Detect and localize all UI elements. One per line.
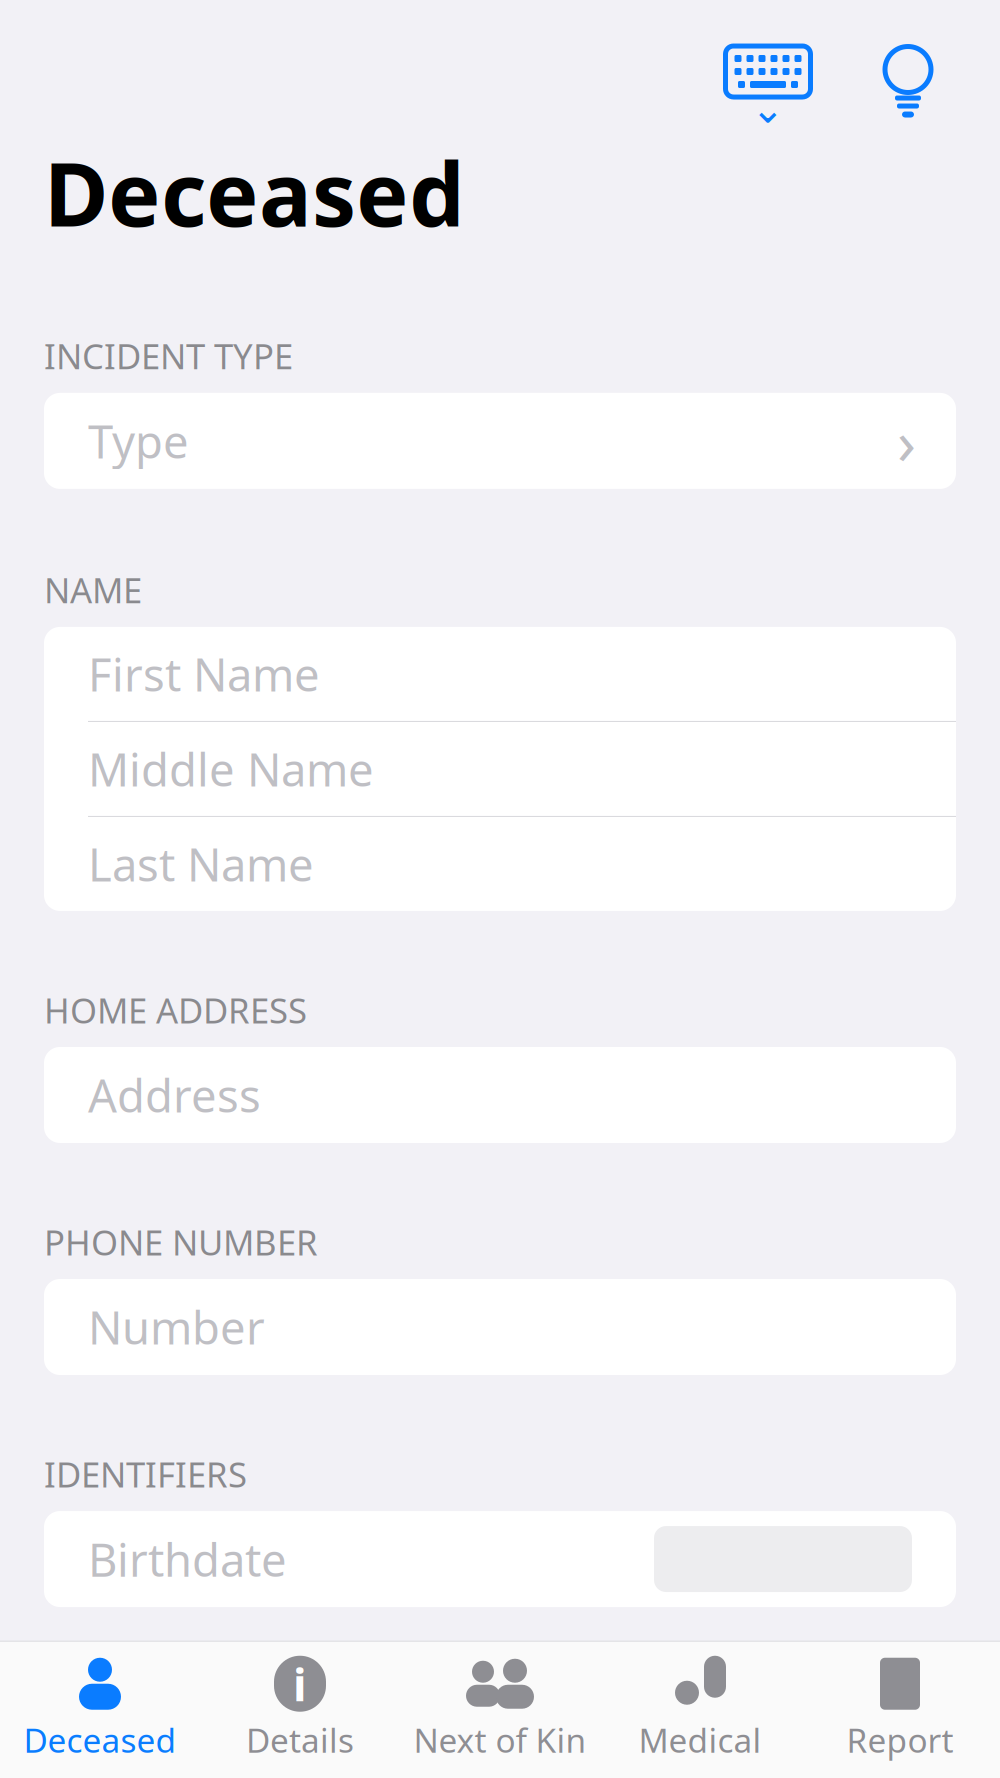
button[interactable]: Address	[44, 1047, 956, 1143]
button[interactable]: Last Name	[44, 817, 956, 911]
staticText: Birthdate	[88, 1529, 287, 1589]
staticText: ⌄	[751, 86, 785, 132]
staticText: Deceased	[44, 134, 465, 251]
staticText: NAME	[44, 567, 142, 613]
staticText: Number	[88, 1297, 265, 1357]
button[interactable]: Dismiss Keyboard	[722, 36, 814, 128]
button[interactable]: Number	[44, 1279, 956, 1375]
button[interactable]: i	[200, 1642, 400, 1778]
button[interactable]: Middle Name	[44, 722, 956, 816]
button[interactable]: Deceased	[0, 1642, 200, 1778]
staticText: Report	[846, 1718, 953, 1762]
button[interactable]: Report	[800, 1642, 1000, 1778]
staticText: Last Name	[88, 834, 314, 894]
staticText: i	[293, 1654, 307, 1714]
staticText: INCIDENT TYPE	[44, 333, 293, 379]
staticText: ›	[897, 400, 916, 482]
staticText: PHONE NUMBER	[44, 1219, 318, 1265]
button[interactable]: Next of Kin	[400, 1642, 600, 1778]
staticText: IDENTIFIERS	[44, 1451, 247, 1497]
staticText: Deceased	[23, 1718, 176, 1762]
button[interactable]: First Name	[44, 627, 956, 721]
staticText: First Name	[88, 644, 320, 704]
staticText: Middle Name	[88, 739, 374, 799]
staticText: Medical	[638, 1718, 761, 1762]
button[interactable]: Medical	[600, 1642, 800, 1778]
staticText: HOME ADDRESS	[44, 987, 307, 1033]
button[interactable]: Birthdate	[44, 1511, 956, 1607]
staticText: Next of Kin	[413, 1718, 586, 1762]
button[interactable]: Tips	[862, 36, 954, 128]
staticText: Address	[88, 1065, 261, 1125]
staticText: Type	[88, 411, 189, 471]
staticText: Details	[246, 1718, 354, 1762]
button[interactable]: Type	[44, 393, 956, 489]
